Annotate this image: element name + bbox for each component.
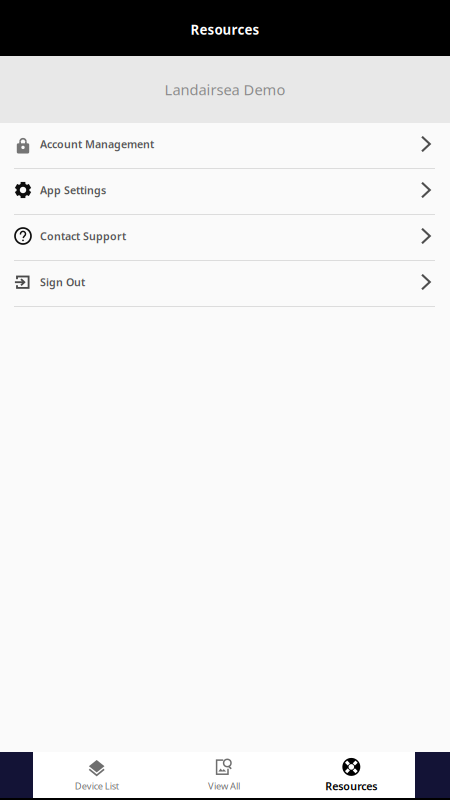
staticText: Device List: [75, 780, 119, 792]
button[interactable]: Device List: [33, 751, 160, 799]
staticText: Contact Support: [40, 229, 126, 243]
staticText: Resources: [325, 779, 377, 793]
button[interactable]: Resources: [288, 750, 415, 800]
staticText: Landairsea Demo: [164, 80, 285, 99]
button[interactable]: Sign Out: [0, 261, 450, 307]
staticText: App Settings: [40, 183, 106, 197]
staticText: View All: [208, 780, 240, 792]
staticText: Sign Out: [40, 275, 85, 289]
button[interactable]: Contact Support: [0, 215, 450, 261]
staticText: Resources: [190, 21, 259, 38]
button[interactable]: View All: [160, 751, 288, 799]
staticText: Account Management: [40, 137, 154, 151]
button[interactable]: Account Management: [0, 123, 450, 169]
button[interactable]: App Settings: [0, 169, 450, 215]
